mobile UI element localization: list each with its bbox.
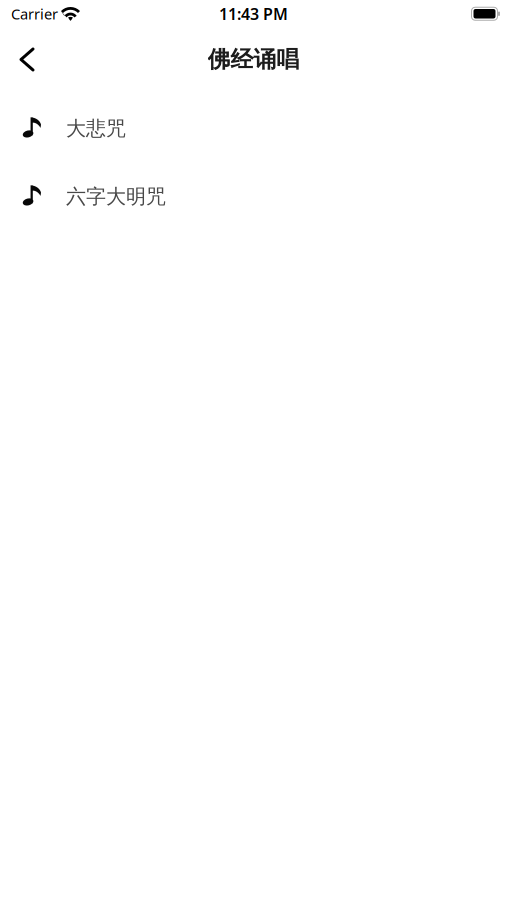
- staticText: 佛经诵唱: [207, 46, 299, 73]
- staticText: Carrier: [11, 4, 58, 23]
- button[interactable]: 大悲咒: [0, 94, 507, 162]
- staticText: 11:43 PM: [219, 3, 288, 24]
- button[interactable]: 六字大明咒: [0, 162, 507, 230]
- button[interactable]: Back: [0, 25, 49, 94]
- staticText: 大悲咒: [66, 116, 126, 141]
- staticText: 六字大明咒: [66, 184, 166, 209]
